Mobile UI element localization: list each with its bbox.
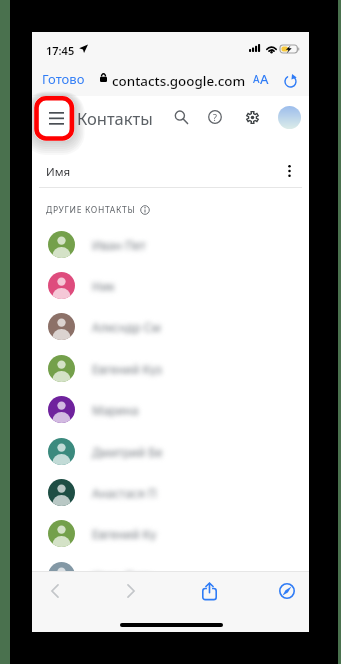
staticText: Евгений Ку [92, 526, 157, 541]
button[interactable]: Алксндр См [32, 306, 309, 347]
staticText: Анастася П [92, 485, 157, 500]
staticText: 17:45 [46, 43, 75, 58]
button[interactable]: Search [167, 103, 195, 131]
button[interactable]: Account [278, 106, 301, 129]
staticText: ? [213, 111, 217, 123]
button[interactable]: Готово [37, 69, 90, 88]
staticText: Иван Пета [92, 568, 153, 583]
button[interactable]: Иван Пет [32, 224, 309, 265]
staticText: Иван Пет [92, 237, 146, 252]
button[interactable]: Share [192, 574, 226, 608]
button[interactable]: Forward [114, 574, 148, 608]
button[interactable]: Ник [32, 265, 309, 306]
button[interactable]: More options [278, 160, 300, 182]
button[interactable]: Анастася П [32, 472, 309, 513]
button[interactable]: Settings [238, 103, 266, 131]
button[interactable]: Text size [250, 70, 272, 86]
staticText: Евгений Куз [92, 361, 162, 376]
staticText: Ник [92, 278, 115, 293]
staticText: A [260, 70, 269, 86]
button[interactable]: Menu [40, 101, 72, 133]
staticText: Имя [46, 164, 71, 180]
button[interactable]: Help [201, 103, 229, 131]
button[interactable]: Tabs [270, 574, 304, 608]
button[interactable]: Дмитрий Бе [32, 431, 309, 472]
button[interactable]: Евгений Куз [32, 348, 309, 389]
staticText: Дмитрий Бе [92, 444, 163, 459]
button[interactable]: Иван Пета [32, 555, 309, 596]
staticText: A [253, 72, 260, 86]
button[interactable]: Марина [32, 389, 309, 430]
staticText: Алксндр См [92, 319, 161, 334]
staticText: Готово [42, 70, 85, 88]
staticText: Марина [92, 402, 139, 417]
button[interactable]: Reload [281, 72, 299, 90]
staticText: contacts.google.com [112, 72, 246, 90]
staticText: ДРУГИЕ КОНТАКТЫ [46, 204, 136, 216]
button[interactable]: Back [38, 574, 72, 608]
button[interactable]: Евгений Ку [32, 513, 309, 554]
staticText: Контакты [77, 107, 153, 129]
